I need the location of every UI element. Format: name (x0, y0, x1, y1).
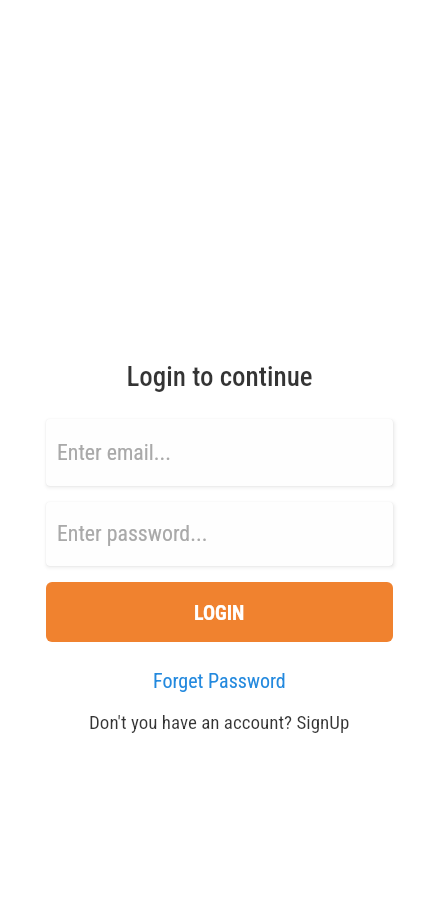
staticText: LOGIN (194, 601, 245, 624)
button[interactable]: Enter email... (46, 419, 393, 486)
button[interactable]: Don't you have an account? SignUp (89, 711, 350, 733)
staticText: Forget Password (153, 669, 286, 692)
staticText: Don't you have an account? SignUp (89, 711, 350, 733)
staticText: Enter email... (57, 440, 172, 466)
button[interactable]: Forget Password (153, 669, 286, 692)
button[interactable]: Enter password... (46, 502, 393, 566)
staticText: Login to continue (126, 361, 313, 393)
button[interactable]: LOGIN (46, 582, 393, 642)
staticText: Enter password... (57, 521, 208, 547)
